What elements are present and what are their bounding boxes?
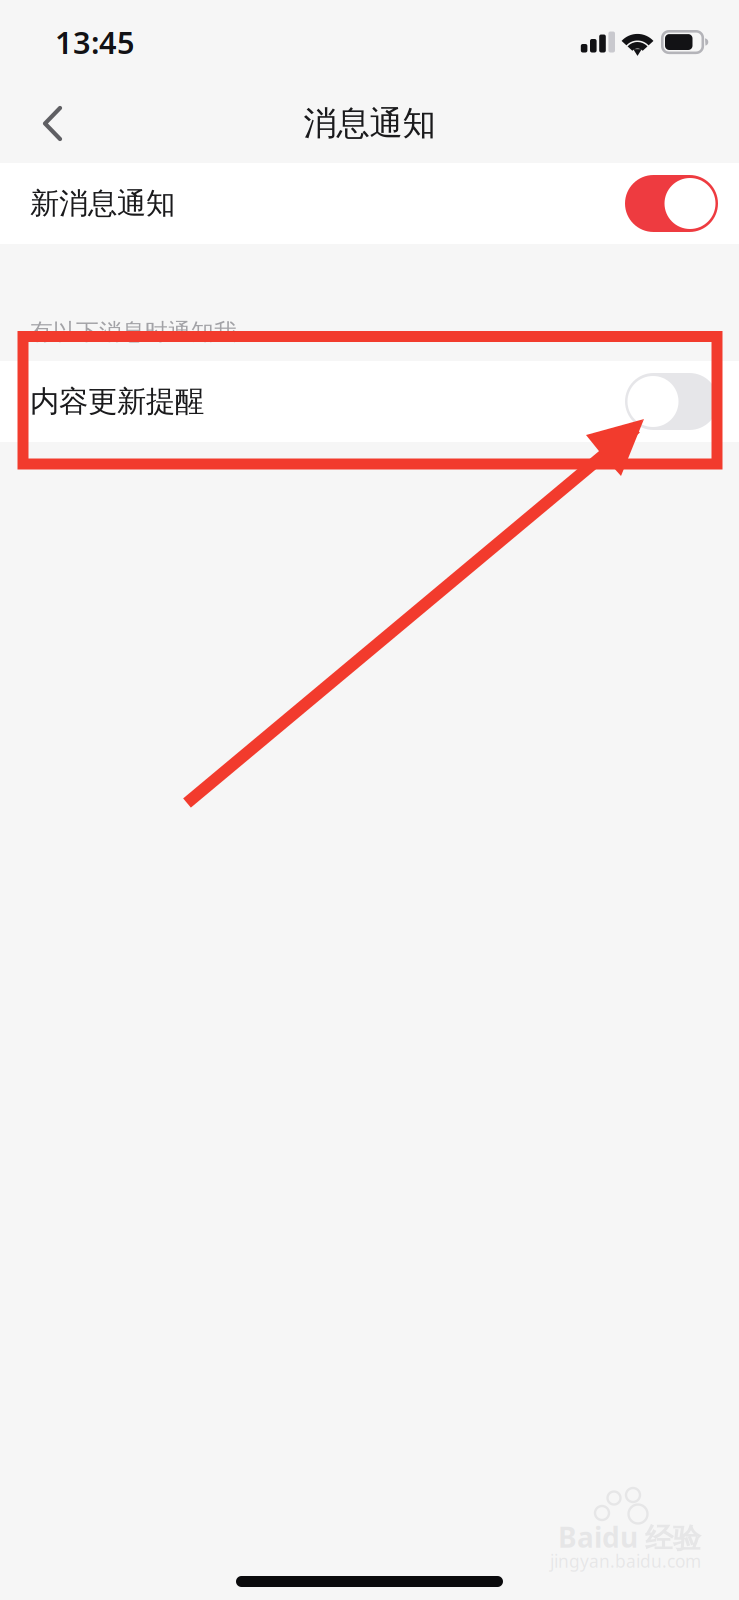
staticText: jingyan.baidu.com xyxy=(550,1549,701,1572)
staticText: 消息通知 xyxy=(303,103,435,144)
staticText: Baidu 经验 xyxy=(558,1518,701,1556)
button[interactable]: Back xyxy=(0,87,82,160)
staticText: 内容更新提醒 xyxy=(30,383,204,419)
staticText: 新消息通知 xyxy=(30,185,175,221)
staticText: 有以下消息时通知我 xyxy=(30,318,237,346)
staticText: 13:45 xyxy=(55,22,135,62)
button[interactable]: 新消息通知 xyxy=(0,163,739,244)
button[interactable]: 内容更新提醒 xyxy=(0,361,739,442)
